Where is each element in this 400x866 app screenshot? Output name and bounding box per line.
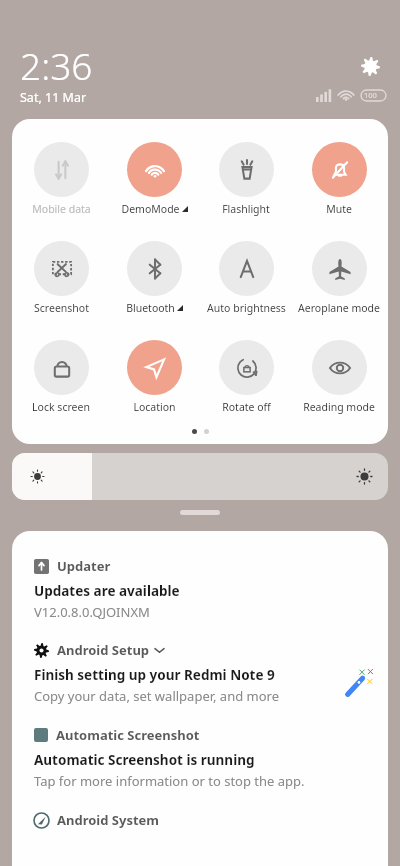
button[interactable]: Brightness — [12, 453, 388, 500]
staticText: DemoMode — [121, 202, 180, 216]
staticText: Screenshot — [34, 301, 89, 315]
staticText: Automatic Screenshot is running — [34, 751, 255, 769]
staticText: Mobile data — [32, 202, 91, 216]
staticText: Mute — [326, 202, 352, 216]
button[interactable]: Mobile data — [17, 142, 105, 216]
staticText: Sat, 11 Mar — [20, 89, 87, 106]
staticText: Auto brightness — [207, 301, 286, 315]
staticText: Android Setup — [57, 641, 150, 659]
staticText: Reading mode — [303, 400, 375, 414]
staticText: Flashlight — [222, 202, 270, 216]
staticText: Android System — [57, 811, 160, 829]
staticText: Automatic Screenshot — [56, 726, 200, 744]
button[interactable]: Rotate off — [202, 340, 290, 414]
staticText: Rotate off — [222, 400, 271, 414]
staticText: Updater — [57, 557, 111, 575]
button[interactable]: Updater — [12, 557, 388, 621]
staticText: Copy your data, set wallpaper, and more — [34, 687, 280, 705]
button[interactable]: Android Setup — [12, 641, 388, 705]
button[interactable]: Reading mode — [295, 340, 383, 414]
button[interactable]: Aeroplane mode — [295, 241, 383, 315]
button[interactable]: Settings — [356, 52, 384, 80]
staticText: Aeroplane mode — [298, 301, 380, 315]
staticText: Tap for more information or to stop the … — [34, 772, 305, 790]
button[interactable]: Mute — [295, 142, 383, 216]
staticText: Bluetooth — [126, 301, 175, 315]
button[interactable]: Screenshot — [17, 241, 105, 315]
staticText: Finish setting up your Redmi Note 9 — [34, 666, 275, 684]
staticText: 100 — [364, 90, 377, 100]
button[interactable]: Flashlight — [202, 142, 290, 216]
staticText: Location — [133, 400, 176, 414]
button[interactable]: Lock screen — [17, 340, 105, 414]
staticText: 2:36 — [20, 40, 93, 90]
staticText: Lock screen — [32, 400, 90, 414]
button[interactable]: Bluetooth — [110, 241, 198, 315]
button[interactable]: DemoMode — [110, 142, 198, 216]
button[interactable]: Location — [110, 340, 198, 414]
staticText: V12.0.8.0.QJOINXM — [34, 603, 150, 621]
staticText: Updates are available — [34, 582, 180, 600]
button[interactable]: Auto brightness — [202, 241, 290, 315]
button[interactable]: Automatic Screenshot — [12, 726, 388, 790]
